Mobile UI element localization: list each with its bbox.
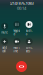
button[interactable]: FaceTime xyxy=(13,38,20,53)
staticText: add call xyxy=(2,46,7,53)
staticText: audio xyxy=(26,29,33,36)
button[interactable]: End call xyxy=(16,61,27,72)
button[interactable]: keypad xyxy=(13,21,20,36)
staticText: mute xyxy=(1,31,8,34)
button[interactable]: contacts xyxy=(26,38,33,53)
staticText: contacts xyxy=(26,46,33,53)
button[interactable]: audio xyxy=(26,21,33,36)
staticText: FaceTime xyxy=(13,46,20,53)
button[interactable]: mute xyxy=(1,23,8,34)
staticText: 00:14 xyxy=(17,6,26,11)
staticText: (214) 876-1083 xyxy=(9,0,33,6)
button[interactable]: add call xyxy=(1,38,8,53)
staticText: keypad xyxy=(13,29,20,36)
